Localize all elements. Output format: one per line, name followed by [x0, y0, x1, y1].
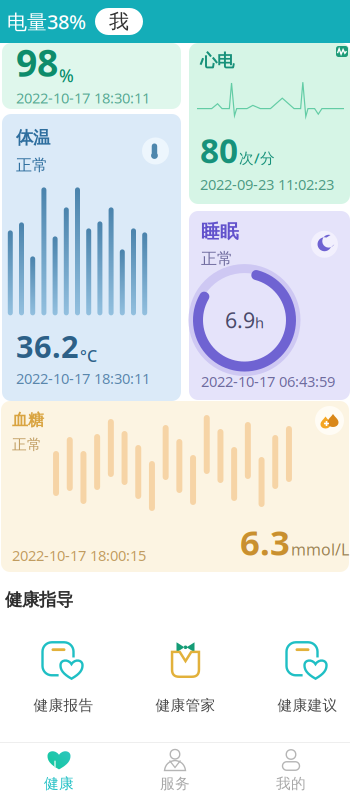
staticText: 我的: [276, 774, 306, 792]
staticText: 80: [200, 128, 238, 173]
staticText: 2022-10-17 18:30:11: [16, 368, 150, 388]
staticText: 我: [109, 9, 129, 34]
button[interactable]: 心电: [189, 43, 350, 204]
button[interactable]: 健康建议: [255, 621, 350, 728]
staticText: °C: [80, 345, 97, 366]
button[interactable]: 健康管家: [133, 621, 238, 728]
button[interactable]: 我的: [233, 743, 349, 799]
button[interactable]: 服务: [117, 743, 233, 799]
staticText: h: [255, 313, 264, 332]
button[interactable]: 健康: [1, 743, 117, 799]
staticText: 正常: [12, 436, 42, 454]
staticText: 心电: [200, 50, 234, 71]
button[interactable]: 98: [2, 43, 181, 109]
staticText: mmol/L: [291, 539, 349, 560]
button[interactable]: 睡眠: [189, 211, 350, 400]
button[interactable]: 体温: [2, 114, 181, 401]
staticText: 睡眠: [201, 220, 239, 243]
staticText: 健康报告: [33, 696, 93, 714]
staticText: 血糖: [12, 410, 44, 430]
staticText: 6.9: [225, 306, 255, 334]
staticText: 健康: [44, 774, 74, 792]
staticText: 6.3: [240, 519, 290, 565]
staticText: 健康建议: [277, 696, 337, 714]
staticText: 健康管家: [155, 696, 215, 714]
staticText: 36.2: [16, 326, 79, 366]
staticText: %: [59, 64, 74, 87]
staticText: 体温: [16, 127, 50, 148]
staticText: 正常: [16, 155, 48, 175]
staticText: 正常: [201, 249, 233, 269]
staticText: 2022-10-17 18:30:11: [16, 88, 150, 107]
staticText: 2022-09-23 11:02:23: [200, 174, 334, 194]
staticText: 98: [16, 37, 58, 87]
staticText: 健康指导: [5, 589, 73, 610]
button[interactable]: 血糖: [1, 401, 349, 572]
staticText: 电量38%: [7, 8, 86, 35]
button[interactable]: 我: [95, 8, 143, 35]
staticText: 2022-10-17 18:00:15: [12, 545, 146, 565]
staticText: 2022-10-17 06:43:59: [201, 372, 335, 391]
staticText: 次/分: [239, 148, 275, 168]
staticText: 服务: [160, 774, 190, 792]
button[interactable]: 健康报告: [11, 621, 116, 728]
